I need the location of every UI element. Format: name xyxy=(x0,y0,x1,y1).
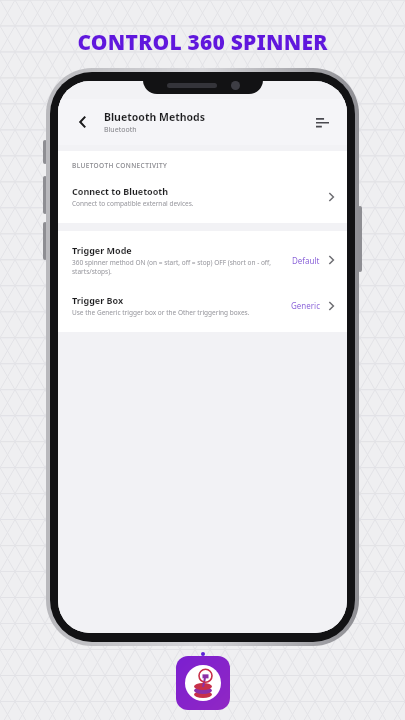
staticText: Connect to Bluetooth xyxy=(72,185,169,197)
staticText: Connect to compatible external devices. xyxy=(72,199,194,208)
staticText: Default xyxy=(292,255,320,266)
staticText: Bluetooth xyxy=(104,125,137,135)
staticText: 360 spinner method ON (on = start, off =… xyxy=(72,258,284,276)
staticText: CONTROL 360 SPINNER xyxy=(77,28,328,57)
staticText: Use the Generic trigger box or the Other… xyxy=(72,308,250,317)
button[interactable]: Trigger Box xyxy=(58,291,347,320)
button[interactable]: Menu xyxy=(309,109,335,135)
button[interactable]: Trigger Mode xyxy=(58,241,347,279)
staticText: Generic xyxy=(291,300,320,311)
staticText: Trigger Box xyxy=(72,294,124,306)
button[interactable]: Connect to Bluetooth xyxy=(58,182,347,211)
staticText: BLUETOOTH CONNECTIVITY xyxy=(72,161,168,170)
button[interactable]: Back xyxy=(70,109,96,135)
staticText: Bluetooth Methods xyxy=(104,110,206,124)
staticText: Trigger Mode xyxy=(72,244,132,256)
